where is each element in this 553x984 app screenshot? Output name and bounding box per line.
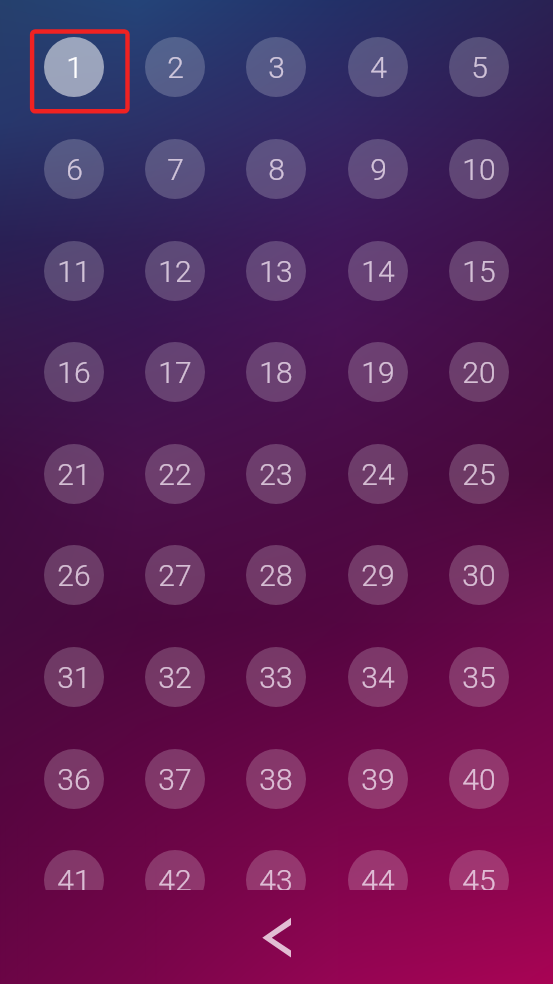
button[interactable]: 34	[327, 626, 428, 728]
button[interactable]: 9	[327, 118, 428, 220]
button[interactable]: 8	[225, 118, 326, 220]
button[interactable]: 23	[225, 423, 326, 525]
button[interactable]: 19	[327, 321, 428, 423]
staticText: 1	[66, 50, 83, 85]
staticText: 22	[158, 457, 192, 492]
staticText: 37	[158, 762, 192, 797]
staticText: 9	[370, 152, 387, 187]
staticText: 28	[259, 558, 293, 593]
button[interactable]: 29	[327, 524, 428, 626]
button[interactable]: 22	[124, 423, 225, 525]
staticText: 39	[361, 762, 395, 797]
button[interactable]: 30	[428, 524, 529, 626]
staticText: 36	[57, 762, 91, 797]
staticText: 33	[259, 660, 293, 695]
button[interactable]: 14	[327, 220, 428, 322]
button[interactable]: 6	[23, 118, 124, 220]
staticText: 44	[361, 863, 395, 890]
button[interactable]: Back	[248, 905, 304, 971]
staticText: 14	[361, 254, 395, 289]
staticText: 25	[462, 457, 496, 492]
staticText: 29	[361, 558, 395, 593]
staticText: 5	[471, 50, 488, 85]
staticText: 2	[167, 50, 184, 85]
staticText: 13	[259, 254, 293, 289]
button[interactable]: 43	[225, 829, 326, 890]
staticText: 4	[370, 50, 387, 85]
staticText: 26	[57, 558, 91, 593]
button[interactable]: 42	[124, 829, 225, 890]
button[interactable]: 10	[428, 118, 529, 220]
button[interactable]: 26	[23, 524, 124, 626]
staticText: 42	[158, 863, 192, 890]
button[interactable]: 7	[124, 118, 225, 220]
button[interactable]: 2	[124, 16, 225, 118]
button[interactable]: 45	[428, 829, 529, 890]
button[interactable]: 15	[428, 220, 529, 322]
button[interactable]: 40	[428, 728, 529, 830]
staticText: 17	[158, 355, 192, 390]
staticText: 3	[268, 50, 285, 85]
staticText: 31	[57, 660, 91, 695]
button[interactable]: 41	[23, 829, 124, 890]
staticText: 6	[66, 152, 83, 187]
button[interactable]: 44	[327, 829, 428, 890]
button[interactable]: 13	[225, 220, 326, 322]
staticText: 23	[259, 457, 293, 492]
staticText: 30	[462, 558, 496, 593]
staticText: 10	[462, 152, 496, 187]
staticText: 27	[158, 558, 192, 593]
staticText: 12	[158, 254, 192, 289]
staticText: 7	[167, 152, 184, 187]
staticText: 35	[462, 660, 496, 695]
staticText: 16	[57, 355, 91, 390]
button[interactable]: 16	[23, 321, 124, 423]
staticText: 21	[57, 457, 91, 492]
button[interactable]: 36	[23, 728, 124, 830]
button[interactable]: 33	[225, 626, 326, 728]
button[interactable]: 17	[124, 321, 225, 423]
staticText: 32	[158, 660, 192, 695]
button[interactable]: 25	[428, 423, 529, 525]
button[interactable]: 37	[124, 728, 225, 830]
button[interactable]: 12	[124, 220, 225, 322]
staticText: 34	[361, 660, 395, 695]
button[interactable]: 4	[327, 16, 428, 118]
button[interactable]: 11	[23, 220, 124, 322]
button[interactable]: 31	[23, 626, 124, 728]
button[interactable]: 24	[327, 423, 428, 525]
staticText: 38	[259, 762, 293, 797]
staticText: 15	[462, 254, 496, 289]
staticText: 8	[268, 152, 285, 187]
staticText: 40	[462, 762, 496, 797]
staticText: 20	[462, 355, 496, 390]
button[interactable]: 21	[23, 423, 124, 525]
button[interactable]: 5	[428, 16, 529, 118]
button[interactable]: 20	[428, 321, 529, 423]
button[interactable]: 35	[428, 626, 529, 728]
staticText: 24	[361, 457, 395, 492]
button[interactable]: 32	[124, 626, 225, 728]
staticText: 18	[259, 355, 293, 390]
button[interactable]: 28	[225, 524, 326, 626]
staticText: 43	[259, 863, 293, 890]
button[interactable]: 18	[225, 321, 326, 423]
button[interactable]: 3	[225, 16, 326, 118]
staticText: 45	[462, 863, 496, 890]
staticText: 11	[57, 254, 91, 289]
staticText: 19	[361, 355, 395, 390]
button[interactable]: 1	[23, 16, 124, 118]
button[interactable]: 39	[327, 728, 428, 830]
button[interactable]: 38	[225, 728, 326, 830]
button[interactable]: 27	[124, 524, 225, 626]
staticText: 41	[57, 863, 91, 890]
